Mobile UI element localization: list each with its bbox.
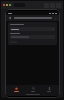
- button[interactable]: [11, 27, 54, 31]
- button[interactable]: [10, 35, 55, 39]
- button[interactable]: [10, 24, 55, 43]
- button[interactable]: Profile: [43, 85, 55, 93]
- button[interactable]: More options: [54, 17, 57, 20]
- button[interactable]: Home: [10, 85, 22, 93]
- button[interactable]: Navigate up: [8, 16, 12, 20]
- button[interactable]: Search: [27, 85, 39, 93]
